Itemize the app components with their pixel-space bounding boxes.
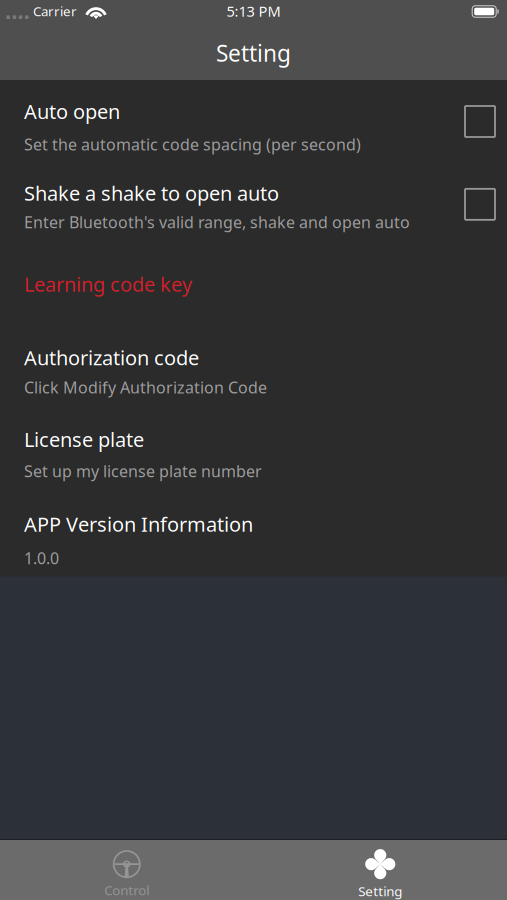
staticText: Click Modify Authorization Code (24, 377, 267, 398)
staticText: Set the automatic code spacing (per seco… (24, 134, 361, 155)
staticText: 1.0.0 (24, 547, 59, 568)
staticText: Learning code key (24, 271, 192, 297)
button[interactable]: Setting (253, 840, 507, 900)
staticText: Setting (216, 38, 291, 68)
button[interactable]: Control (0, 840, 253, 900)
staticText: Auto open (24, 98, 120, 125)
button[interactable]: Shake a shake to open auto (0, 166, 507, 246)
staticText: License plate (24, 426, 144, 453)
staticText: Authorization code (24, 344, 199, 371)
button[interactable]: Learning code key (0, 246, 507, 327)
button[interactable]: Auto open (0, 80, 507, 166)
staticText: Setting (358, 882, 402, 900)
staticText: APP Version Information (24, 511, 253, 537)
staticText: Enter Bluetooth's valid range, shake and… (24, 211, 410, 233)
staticText: Control (104, 881, 149, 899)
button[interactable]: License plate (0, 411, 507, 496)
button[interactable]: Authorization code (0, 327, 507, 411)
staticText: Carrier (33, 2, 77, 20)
staticText: Set up my license plate number (24, 460, 262, 482)
staticText: 5:13 PM (226, 1, 280, 21)
button[interactable]: APP Version Information (0, 496, 507, 577)
staticText: Shake a shake to open auto (24, 180, 279, 206)
